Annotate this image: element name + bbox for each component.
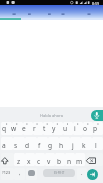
staticText: w bbox=[11, 124, 17, 133]
button[interactable] bbox=[65, 153, 75, 166]
button[interactable] bbox=[1, 137, 13, 150]
staticText: e bbox=[22, 124, 26, 133]
staticText: v bbox=[47, 157, 51, 166]
button[interactable] bbox=[14, 153, 25, 166]
staticText: l bbox=[95, 141, 97, 150]
button[interactable] bbox=[91, 110, 103, 121]
button[interactable] bbox=[81, 137, 92, 150]
button[interactable] bbox=[37, 137, 48, 150]
staticText: Habla ahora bbox=[40, 113, 63, 118]
staticText: k bbox=[82, 141, 86, 150]
staticText: r bbox=[33, 124, 36, 133]
button[interactable] bbox=[45, 153, 55, 166]
button[interactable] bbox=[70, 137, 81, 150]
button[interactable] bbox=[1, 122, 12, 135]
staticText: o bbox=[83, 124, 87, 133]
button[interactable] bbox=[33, 122, 43, 135]
button[interactable] bbox=[25, 153, 35, 166]
staticText: s bbox=[14, 141, 18, 150]
button[interactable] bbox=[85, 153, 103, 166]
staticText: ES·FR·IT bbox=[54, 171, 65, 175]
staticText: g bbox=[48, 141, 53, 150]
button[interactable] bbox=[75, 153, 85, 166]
button[interactable] bbox=[12, 122, 23, 135]
button[interactable] bbox=[87, 169, 98, 180]
staticText: i bbox=[74, 124, 76, 133]
button[interactable] bbox=[1, 168, 14, 180]
staticText: ?123 bbox=[2, 170, 11, 175]
button[interactable] bbox=[48, 137, 59, 150]
button[interactable] bbox=[83, 122, 93, 135]
button[interactable] bbox=[53, 122, 63, 135]
button[interactable] bbox=[0, 5, 103, 18]
button[interactable] bbox=[23, 122, 33, 135]
button[interactable]: Habla ahora bbox=[0, 109, 103, 121]
staticText: p bbox=[93, 124, 98, 133]
staticText: j bbox=[72, 141, 74, 150]
button[interactable] bbox=[26, 168, 37, 180]
staticText: . bbox=[81, 169, 83, 176]
button[interactable] bbox=[59, 137, 70, 150]
staticText: n bbox=[67, 157, 72, 166]
staticText: t bbox=[43, 124, 46, 133]
staticText: b bbox=[57, 157, 62, 166]
button[interactable] bbox=[55, 153, 65, 166]
button[interactable] bbox=[92, 137, 103, 150]
staticText: c bbox=[37, 157, 41, 166]
staticText: a bbox=[2, 141, 6, 150]
staticText: , bbox=[19, 169, 21, 176]
button[interactable] bbox=[77, 168, 87, 180]
button[interactable] bbox=[1, 153, 14, 166]
staticText: y bbox=[52, 124, 56, 133]
staticText: h bbox=[59, 141, 64, 150]
button[interactable] bbox=[73, 122, 83, 135]
staticText: m bbox=[76, 157, 83, 166]
button[interactable] bbox=[63, 122, 73, 135]
button[interactable] bbox=[28, 170, 35, 176]
staticText: 8:59 bbox=[92, 1, 100, 6]
button[interactable] bbox=[13, 137, 25, 150]
button[interactable] bbox=[35, 153, 45, 166]
staticText: q bbox=[2, 124, 7, 133]
staticText: x bbox=[27, 157, 31, 166]
button[interactable] bbox=[43, 122, 53, 135]
staticText: f bbox=[38, 141, 41, 150]
button[interactable] bbox=[14, 168, 25, 180]
staticText: z bbox=[17, 157, 21, 166]
button[interactable]: ES·FR·IT bbox=[43, 169, 75, 177]
button[interactable] bbox=[93, 122, 103, 135]
staticText: d bbox=[25, 141, 30, 150]
staticText: u bbox=[63, 124, 68, 133]
button[interactable] bbox=[25, 137, 37, 150]
